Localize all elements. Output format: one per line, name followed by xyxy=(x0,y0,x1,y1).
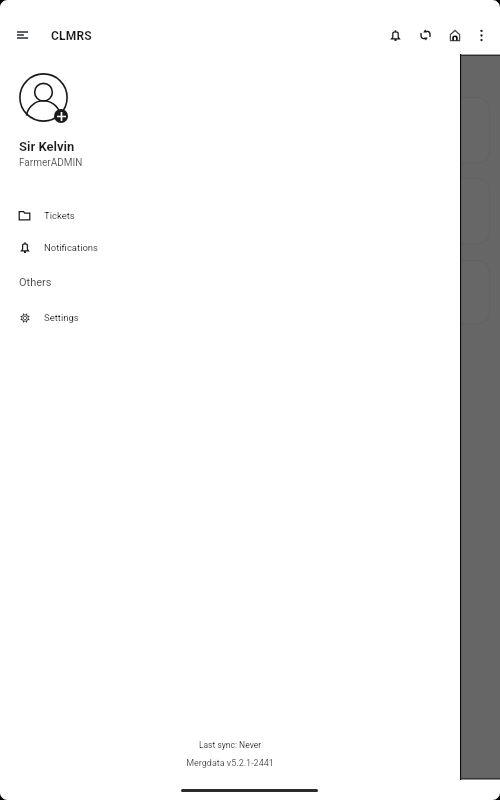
button[interactable]: Home xyxy=(441,21,469,49)
staticText: Last sync: Never xyxy=(0,740,460,750)
staticText: Sir Kelvin xyxy=(19,139,75,154)
staticText: Notifications xyxy=(44,242,99,253)
button[interactable]: More options xyxy=(467,21,495,49)
button[interactable]: Notifications xyxy=(381,21,409,49)
staticText: Tickets xyxy=(44,210,75,221)
staticText: FarmerADMIN xyxy=(19,157,83,169)
button[interactable]: Tickets xyxy=(0,200,460,230)
staticText: Others xyxy=(19,276,52,289)
button[interactable]: Notifications xyxy=(0,232,460,262)
staticText: Mergdata v5.2.1-2441 xyxy=(0,758,460,769)
staticText: CLMRS xyxy=(51,29,92,43)
button[interactable]: Account profile xyxy=(19,73,69,123)
button[interactable]: Open navigation menu xyxy=(5,18,39,52)
button[interactable]: Settings xyxy=(0,302,460,332)
button[interactable]: Sync data xyxy=(411,21,439,49)
staticText: Settings xyxy=(44,312,79,323)
